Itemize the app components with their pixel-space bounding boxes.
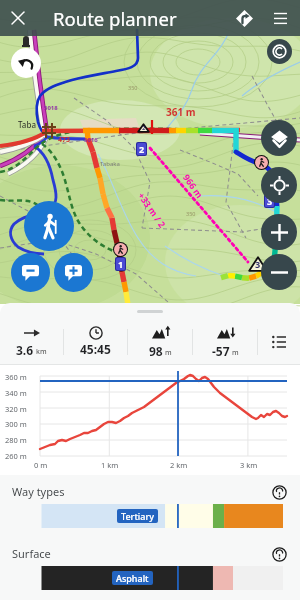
staticText: 1 bbox=[118, 258, 124, 270]
button[interactable]: Navigate bbox=[226, 0, 262, 36]
button[interactable]: Layers bbox=[261, 120, 297, 156]
staticText: 3 km bbox=[240, 460, 258, 470]
staticText: km bbox=[36, 347, 47, 357]
button[interactable]: 45:45 bbox=[64, 320, 127, 363]
staticText: 98 bbox=[149, 343, 163, 359]
staticText: 360 m bbox=[5, 372, 27, 382]
staticText: Tabaka bbox=[100, 160, 120, 168]
staticText: m bbox=[232, 348, 239, 358]
staticText: 0 m bbox=[34, 460, 48, 470]
button[interactable]: Close bbox=[0, 0, 36, 36]
staticText: 300 m bbox=[5, 419, 27, 429]
staticText: 2 bbox=[142, 124, 146, 132]
staticText: 473 bbox=[58, 135, 71, 145]
button[interactable]: Copyright bbox=[267, 39, 292, 64]
staticText: 350 bbox=[128, 84, 138, 91]
button[interactable]: 98 bbox=[128, 320, 192, 363]
staticText: Taba bbox=[18, 119, 36, 130]
staticText: 2 km bbox=[170, 460, 188, 470]
button[interactable]: Add waypoint bbox=[54, 253, 93, 292]
staticText: m bbox=[165, 348, 172, 358]
button[interactable]: My location bbox=[261, 167, 297, 203]
staticText: -57 bbox=[212, 343, 230, 359]
staticText: Asphalt bbox=[116, 572, 149, 584]
staticText: 350 bbox=[186, 210, 196, 217]
staticText: 3 bbox=[255, 258, 261, 271]
staticText: 1 km bbox=[101, 460, 119, 470]
staticText: 2 bbox=[139, 143, 145, 155]
staticText: +33 m / 2 bbox=[136, 190, 169, 230]
button[interactable]: 3.6 bbox=[0, 320, 63, 363]
staticText: Way types bbox=[12, 484, 65, 499]
button[interactable]: Menu bbox=[262, 0, 298, 36]
button[interactable]: Hiking activity bbox=[24, 201, 74, 251]
staticText: 45:45 bbox=[80, 341, 111, 357]
staticText: Surface bbox=[12, 546, 51, 561]
staticText: 5016 bbox=[84, 136, 98, 144]
button[interactable]: Remove waypoint bbox=[11, 253, 50, 292]
staticText: Route planner bbox=[53, 6, 177, 31]
button[interactable]: Help about Surface bbox=[268, 543, 290, 565]
staticText: 320 m bbox=[5, 404, 27, 414]
button[interactable]: Undo bbox=[11, 48, 41, 78]
button[interactable]: -57 bbox=[193, 320, 257, 363]
button[interactable]: Zoom in bbox=[261, 214, 297, 250]
button[interactable]: Help about Way types bbox=[268, 481, 290, 503]
staticText: 3 bbox=[267, 195, 273, 207]
button[interactable]: Zoom out bbox=[261, 254, 297, 290]
staticText: 361 m bbox=[166, 105, 196, 119]
staticText: 340 m bbox=[5, 388, 27, 398]
staticText: Tertiary bbox=[121, 510, 154, 522]
staticText: 5018 bbox=[44, 104, 58, 112]
staticText: 260 m bbox=[5, 451, 27, 461]
button[interactable]: Route details bbox=[258, 320, 300, 363]
staticText: 966 m bbox=[181, 171, 206, 200]
staticText: 3.6 bbox=[16, 342, 34, 358]
staticText: 280 m bbox=[5, 435, 27, 445]
